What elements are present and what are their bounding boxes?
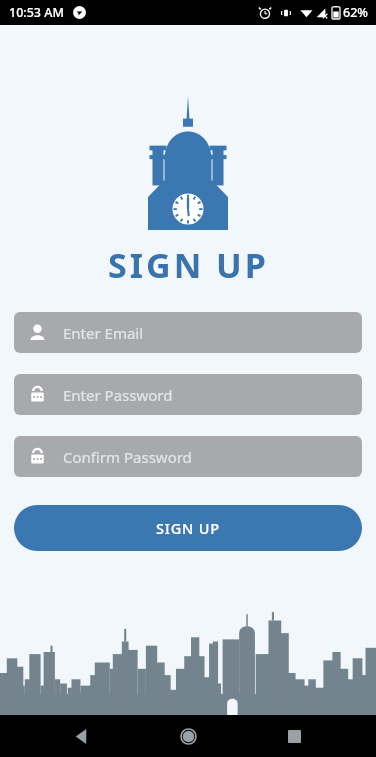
button[interactable]: Confirm Password: [14, 436, 362, 477]
button[interactable]: Enter Password: [14, 374, 362, 415]
button[interactable]: SIGN UP: [14, 505, 362, 551]
button[interactable]: Recent apps: [270, 715, 318, 757]
button[interactable]: Enter Email: [14, 312, 362, 353]
button[interactable]: Back: [58, 715, 106, 757]
button[interactable]: Home: [164, 715, 212, 757]
staticText: Confirm Password: [63, 447, 192, 467]
staticText: Enter Email: [63, 323, 144, 343]
staticText: SIGN UP: [108, 242, 269, 288]
staticText: SIGN UP: [156, 518, 220, 538]
staticText: 10:53 AM: [9, 4, 64, 21]
staticText: 62%: [343, 4, 368, 21]
staticText: Enter Password: [63, 385, 173, 405]
